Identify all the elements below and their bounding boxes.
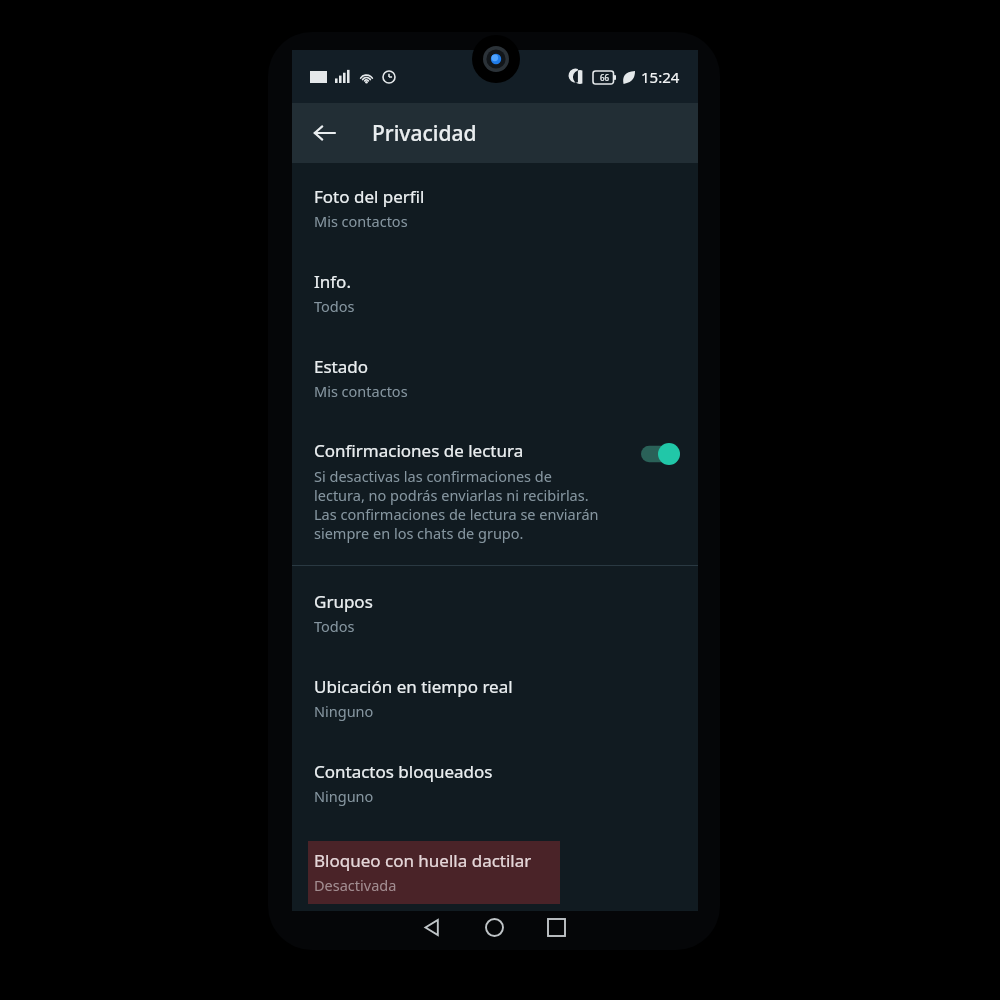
button[interactable]: Contactos bloqueados	[292, 735, 698, 820]
button[interactable]: Bloqueo con huella dactilar	[308, 841, 560, 904]
staticText: 15:24	[641, 67, 680, 87]
staticText: Foto del perfil	[314, 185, 425, 208]
staticText: Info.	[314, 270, 351, 293]
staticText: Todos	[314, 296, 355, 316]
staticText: Desactivada	[314, 875, 397, 895]
staticText: Contactos bloqueados	[314, 760, 493, 783]
staticText: Mis contactos	[314, 381, 408, 401]
button[interactable]: Foto del perfil	[292, 163, 698, 245]
button[interactable]: Home	[463, 908, 525, 947]
staticText: Grupos	[314, 590, 373, 613]
staticText: Ninguno	[314, 786, 374, 806]
staticText: Bloqueo con huella dactilar	[314, 849, 532, 872]
button[interactable]: Recents	[525, 908, 587, 947]
button[interactable]: Estado	[292, 330, 698, 415]
button[interactable]: Grupos	[292, 566, 698, 650]
staticText: Estado	[314, 355, 369, 378]
button[interactable]: Confirmaciones de lectura	[292, 415, 698, 565]
staticText: Si desactivas las confirmaciones de lect…	[314, 466, 599, 543]
button[interactable]: Info.	[292, 245, 698, 330]
button[interactable]: Ubicación en tiempo real	[292, 650, 698, 735]
button[interactable]: Back	[401, 908, 463, 947]
staticText: Ubicación en tiempo real	[314, 675, 513, 698]
button[interactable]: Back	[302, 111, 346, 155]
staticText: Todos	[314, 616, 355, 636]
staticText: Ninguno	[314, 701, 374, 721]
staticText: 66	[600, 72, 610, 83]
staticText: Privacidad	[372, 119, 477, 148]
staticText: Mis contactos	[314, 211, 408, 231]
staticText: Confirmaciones de lectura	[314, 439, 524, 462]
